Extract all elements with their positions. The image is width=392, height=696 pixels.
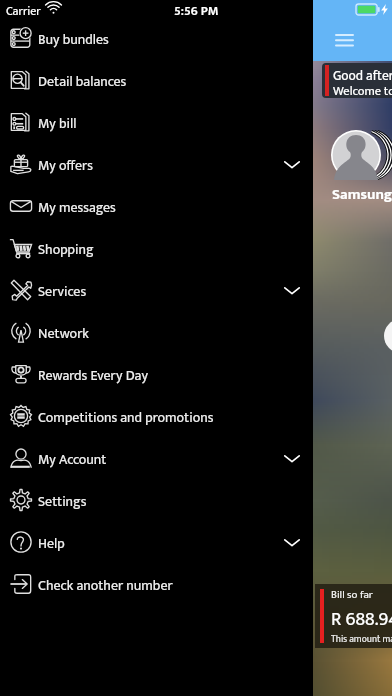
staticText: This amount may <box>331 631 392 647</box>
button[interactable]: My bill <box>0 101 313 143</box>
staticText: Good afternoon <box>333 65 392 87</box>
staticText: Check another number <box>38 574 173 597</box>
staticText: Settings <box>38 490 87 513</box>
staticText: Shopping <box>38 238 94 261</box>
button[interactable]: Competitions and promotions <box>0 395 313 437</box>
staticText: My offers <box>38 154 93 177</box>
staticText: My bill <box>38 112 77 135</box>
staticText: Samsung S8 <box>332 182 392 207</box>
button[interactable]: Buy bundles <box>0 17 313 59</box>
button[interactable]: My offers <box>0 143 313 185</box>
other: Open navigation menu <box>336 34 353 46</box>
staticText: My Account <box>38 448 107 471</box>
button[interactable]: Network <box>0 311 313 353</box>
staticText: Detail balances <box>38 70 127 93</box>
button[interactable]: Settings <box>0 479 313 521</box>
staticText: Bill so far <box>331 586 373 604</box>
staticText: Welcome to My <box>333 81 392 102</box>
button[interactable]: Shopping <box>0 227 313 269</box>
staticText: Help <box>38 532 65 555</box>
staticText: Rewards Every Day <box>38 364 148 387</box>
staticText: Buy bundles <box>38 28 109 51</box>
staticText: Network <box>38 322 89 345</box>
button[interactable]: Rewards Every Day <box>0 353 313 395</box>
button[interactable]: Help <box>0 521 313 563</box>
staticText: Services <box>38 280 87 303</box>
staticText: My messages <box>38 196 116 219</box>
button[interactable]: Detail balances <box>0 59 313 101</box>
staticText: 5:56 PM <box>174 0 219 18</box>
button[interactable]: Services <box>0 269 313 311</box>
staticText: Carrier <box>6 1 41 19</box>
staticText: Competitions and promotions <box>38 406 214 429</box>
button[interactable]: My messages <box>0 185 313 227</box>
button[interactable]: My Account <box>0 437 313 479</box>
staticText: R 688.94 <box>331 604 392 636</box>
button[interactable]: Check another number <box>0 563 313 605</box>
